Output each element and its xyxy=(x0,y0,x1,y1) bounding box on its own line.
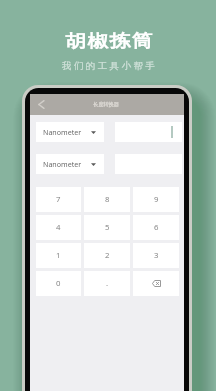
staticText: 7 xyxy=(56,194,61,205)
button[interactable] xyxy=(115,122,182,142)
staticText: 我们的工具小帮手 xyxy=(62,60,158,72)
staticText: 5 xyxy=(105,222,110,233)
button[interactable]: Backspace xyxy=(133,271,179,296)
staticText: 4 xyxy=(56,222,61,233)
button[interactable]: 9 xyxy=(133,187,179,212)
staticText: 长度转换器 xyxy=(93,101,119,108)
staticText: 1 xyxy=(56,250,61,261)
button[interactable]: Back xyxy=(30,94,51,115)
staticText: 胡椒拣筒 xyxy=(65,30,155,52)
button[interactable]: 8 xyxy=(84,187,130,212)
button[interactable]: 0 xyxy=(36,271,81,296)
staticText: Nanometer xyxy=(43,127,82,137)
staticText: . xyxy=(106,278,109,289)
button[interactable]: 6 xyxy=(133,215,179,240)
staticText: 6 xyxy=(154,222,159,233)
staticText: 9 xyxy=(154,194,159,205)
button[interactable]: 3 xyxy=(133,243,179,268)
staticText: Nanometer xyxy=(43,159,82,169)
staticText: 3 xyxy=(154,250,159,261)
button[interactable]: 1 xyxy=(36,243,81,268)
staticText: 2 xyxy=(105,250,110,261)
button[interactable]: Nanometer xyxy=(36,122,104,142)
button[interactable]: 4 xyxy=(36,215,81,240)
staticText: 0 xyxy=(56,278,61,289)
staticText: 8 xyxy=(105,194,110,205)
button[interactable]: 2 xyxy=(84,243,130,268)
button[interactable]: 5 xyxy=(84,215,130,240)
button[interactable]: 7 xyxy=(36,187,81,212)
button[interactable]: Nanometer xyxy=(36,154,104,174)
